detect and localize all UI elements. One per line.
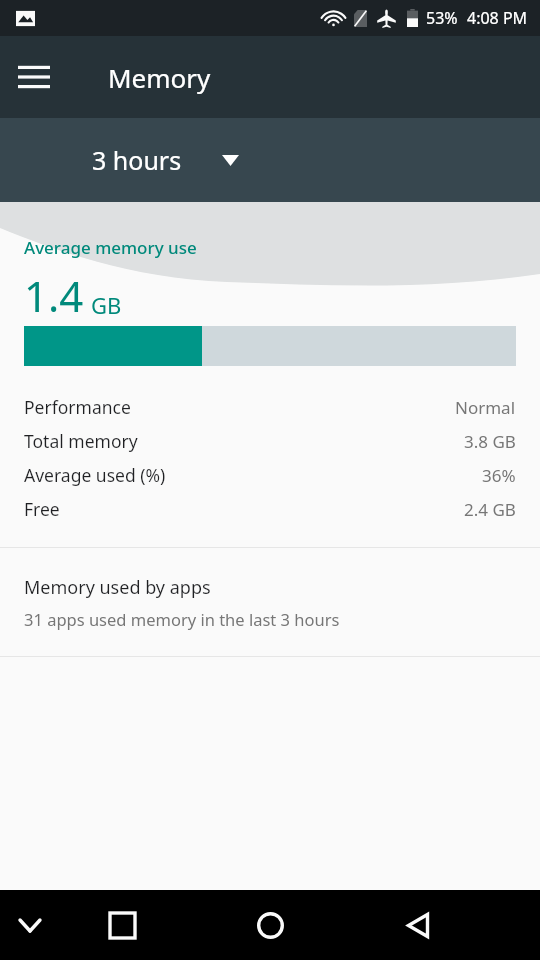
- staticText: 53%: [426, 7, 458, 29]
- staticText: 3 hours: [92, 143, 182, 177]
- button[interactable]: Total memory: [0, 424, 540, 458]
- staticText: Memory used by apps: [24, 575, 211, 600]
- button[interactable]: 3 hours: [92, 143, 263, 177]
- staticText: 2.4 GB: [464, 498, 516, 521]
- button[interactable]: Home: [244, 899, 296, 951]
- button[interactable]: Memory used by apps: [0, 548, 540, 656]
- staticText: GB: [91, 290, 122, 320]
- staticText: Free: [24, 497, 60, 521]
- staticText: Performance: [24, 395, 131, 419]
- button[interactable]: Hide keyboard: [8, 903, 52, 947]
- staticText: Normal: [455, 396, 516, 419]
- button[interactable]: Performance: [0, 390, 540, 424]
- button[interactable]: Free: [0, 492, 540, 526]
- staticText: 36%: [482, 464, 516, 487]
- button[interactable]: Back: [394, 901, 442, 949]
- staticText: Memory: [108, 60, 211, 95]
- staticText: 1.4: [24, 267, 84, 324]
- button[interactable]: Recent apps: [98, 901, 146, 949]
- staticText: 3.8 GB: [464, 430, 516, 453]
- staticText: 4:08 PM: [467, 7, 528, 29]
- staticText: Average memory use: [24, 236, 197, 259]
- button[interactable]: Open navigation drawer: [10, 53, 58, 101]
- staticText: Average used (%): [24, 463, 166, 487]
- staticText: 31 apps used memory in the last 3 hours: [24, 608, 340, 630]
- button[interactable]: Average used (%): [0, 458, 540, 492]
- staticText: Total memory: [24, 429, 138, 453]
